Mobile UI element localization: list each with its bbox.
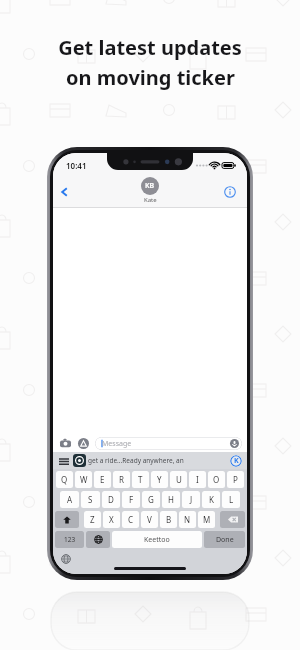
button[interactable]: Backspace <box>220 511 245 528</box>
button[interactable]: E <box>94 471 111 488</box>
staticText: Kate <box>144 196 157 204</box>
staticText: X <box>109 514 114 525</box>
staticText: H <box>168 494 174 505</box>
staticText: 10:41 <box>66 160 87 171</box>
staticText: J <box>190 494 193 505</box>
button[interactable]: Y <box>151 471 168 488</box>
button[interactable]: K <box>202 491 220 508</box>
button[interactable]: J <box>182 491 200 508</box>
staticText: L <box>229 494 234 505</box>
staticText: C <box>128 514 134 525</box>
button[interactable]: F <box>122 491 140 508</box>
button[interactable]: V <box>141 511 158 528</box>
button[interactable]: M <box>198 511 215 528</box>
button[interactable]: T <box>132 471 149 488</box>
button[interactable]: Emoji and languages <box>59 552 73 566</box>
staticText: A <box>67 494 73 505</box>
staticText: K <box>234 456 239 466</box>
staticText: Q <box>61 474 68 485</box>
staticText: Get latest updates <box>58 34 242 61</box>
staticText: O <box>213 474 220 485</box>
staticText: E <box>100 474 105 485</box>
button[interactable]: A <box>60 491 79 508</box>
button[interactable]: I <box>189 471 206 488</box>
button[interactable]: Menu <box>57 454 71 468</box>
button[interactable]: Back <box>53 180 77 204</box>
button[interactable]: C <box>122 511 139 528</box>
staticText: Done <box>216 535 234 545</box>
button[interactable]: Switch keyboard <box>86 531 110 548</box>
button[interactable]: Keettoo <box>112 531 202 548</box>
staticText: D <box>108 494 114 505</box>
staticText: get a ride...Ready anywhere, an <box>88 456 229 465</box>
staticText: on moving ticker <box>66 64 235 91</box>
button[interactable]: Keettoo <box>229 454 243 468</box>
button[interactable]: N <box>179 511 196 528</box>
staticText: Keettoo <box>144 535 170 545</box>
staticText: KB <box>145 181 155 191</box>
button[interactable]: H <box>162 491 180 508</box>
staticText: F <box>129 494 134 505</box>
button[interactable]: Dictate <box>229 438 240 449</box>
button[interactable]: L <box>222 491 240 508</box>
staticText: Z <box>90 514 95 525</box>
staticText: 123 <box>64 535 76 544</box>
button[interactable]: 123 <box>55 531 84 548</box>
button[interactable]: Ticker source <box>73 454 86 467</box>
button[interactable]: U <box>170 471 187 488</box>
button[interactable]: Q <box>56 471 73 488</box>
button[interactable]: Shift <box>55 511 79 528</box>
button[interactable]: KB <box>141 177 159 204</box>
button[interactable]: Apps <box>76 436 91 451</box>
staticText: K <box>209 494 214 505</box>
staticText: P <box>233 474 238 485</box>
button[interactable]: D <box>102 491 120 508</box>
button[interactable]: R <box>113 471 130 488</box>
button[interactable]: P <box>227 471 244 488</box>
button[interactable]: Camera <box>58 436 73 451</box>
button[interactable]: S <box>81 491 100 508</box>
staticText: N <box>184 514 191 525</box>
button[interactable]: Details <box>219 181 241 203</box>
staticText: V <box>147 514 152 525</box>
staticText: W <box>80 474 88 485</box>
staticText: Y <box>157 474 162 485</box>
button[interactable]: Message <box>95 437 242 450</box>
staticText: M <box>203 514 211 525</box>
staticText: U <box>176 474 182 485</box>
staticText: I <box>196 474 199 485</box>
button[interactable]: W <box>75 471 92 488</box>
staticText: Message <box>102 439 132 449</box>
button[interactable]: Z <box>84 511 101 528</box>
button[interactable]: O <box>208 471 225 488</box>
staticText: S <box>88 494 93 505</box>
staticText: G <box>148 494 154 505</box>
button[interactable]: B <box>160 511 177 528</box>
staticText: R <box>119 474 124 485</box>
button[interactable]: X <box>103 511 120 528</box>
button[interactable]: G <box>142 491 160 508</box>
button[interactable]: Done <box>204 531 245 548</box>
staticText: B <box>166 514 172 525</box>
staticText: T <box>138 474 143 485</box>
